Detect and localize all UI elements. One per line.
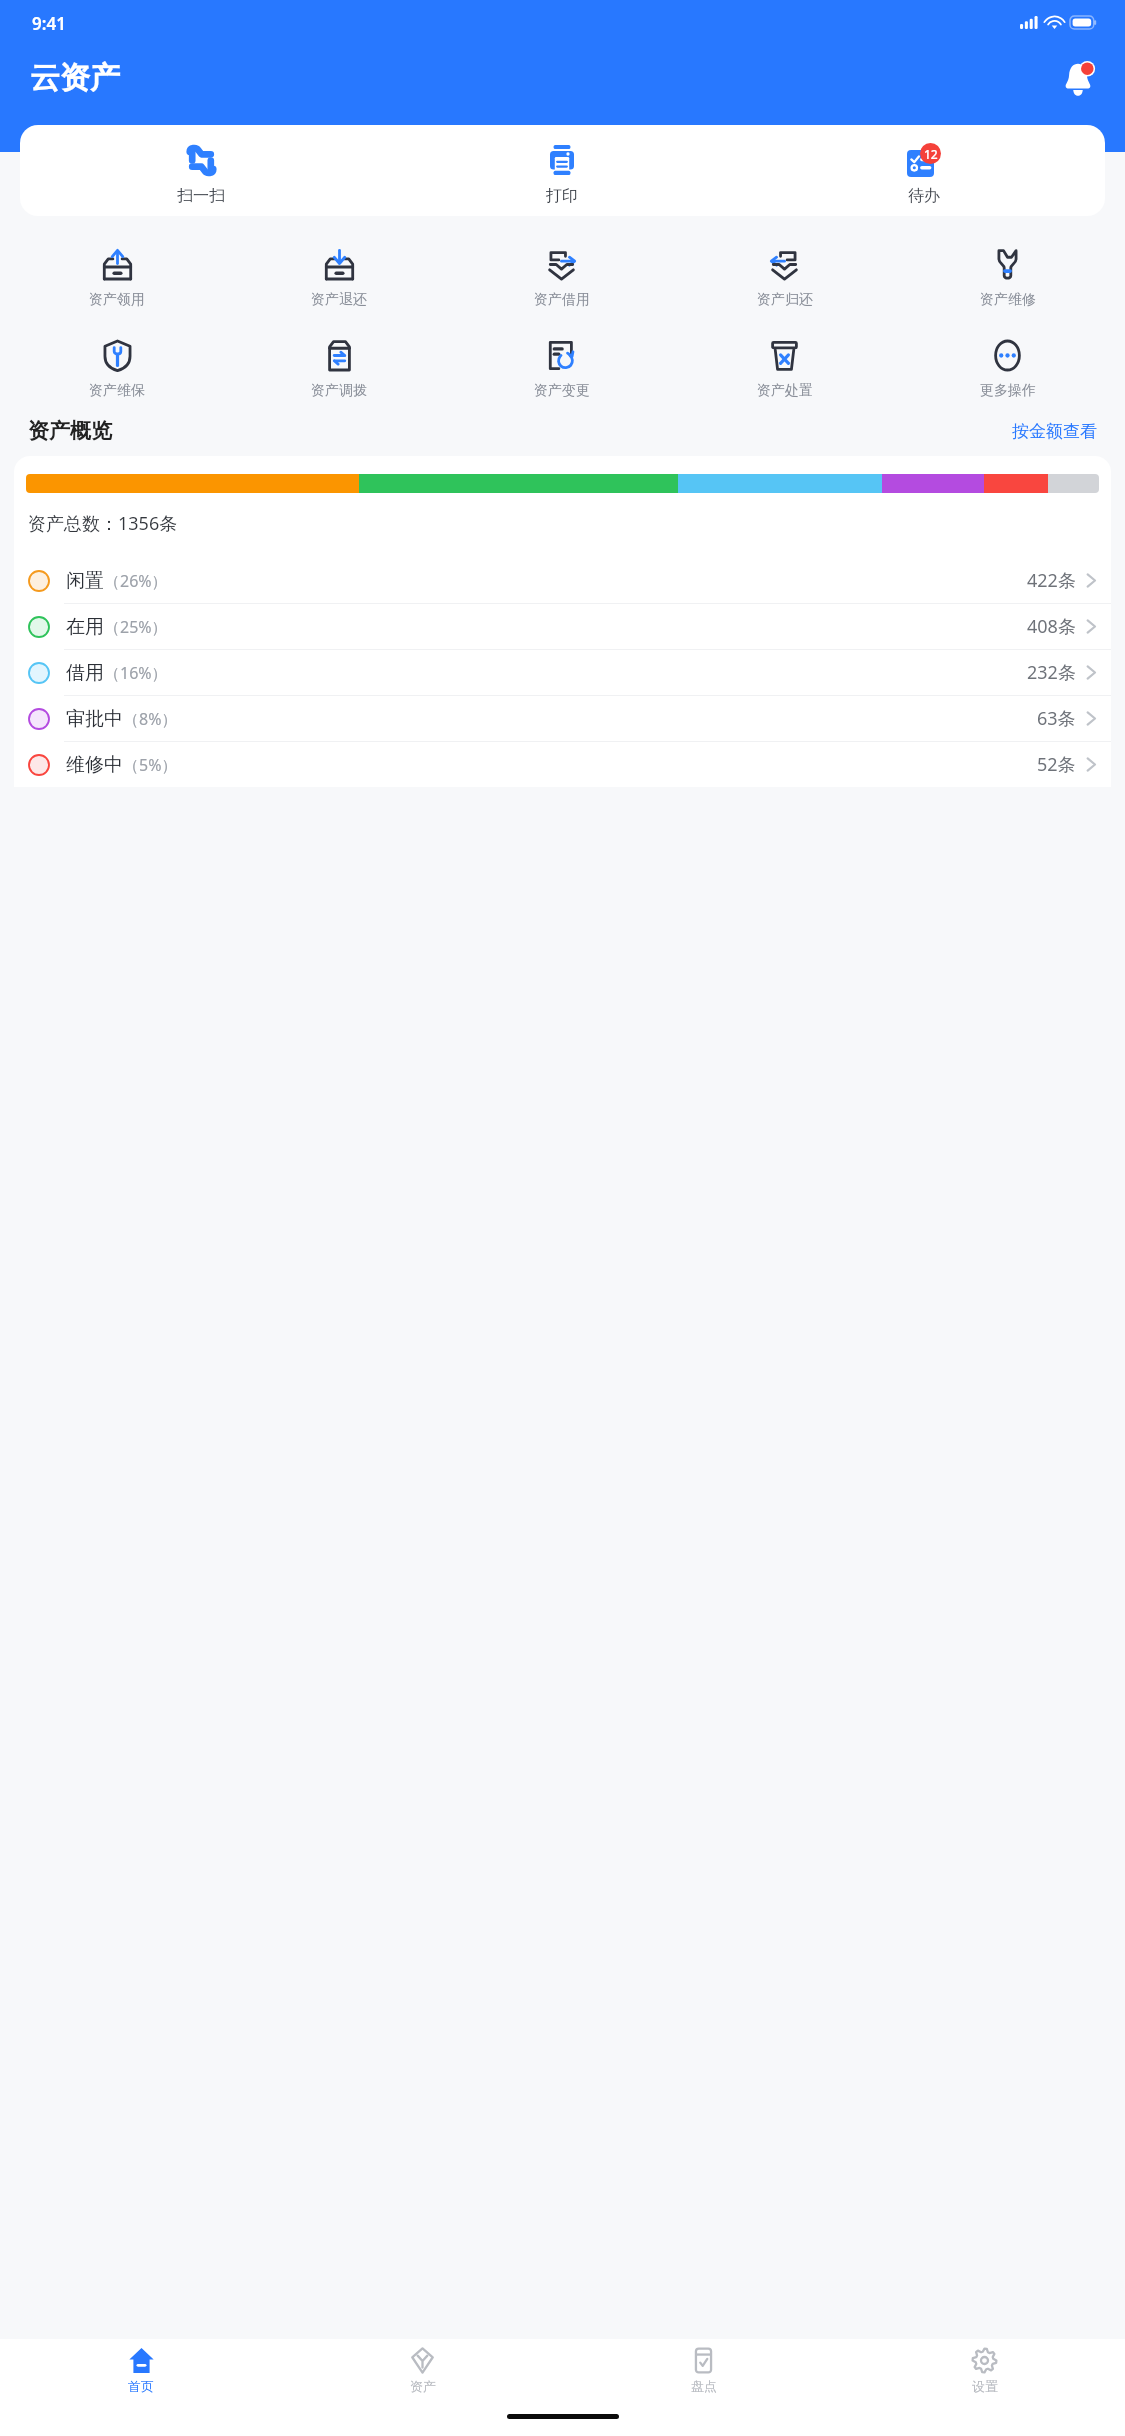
staticText: 9:41 — [32, 12, 66, 35]
staticText: 按金额查看 — [1012, 421, 1097, 442]
button[interactable]: 按金额查看 — [1012, 421, 1097, 442]
staticText: 打印 — [546, 186, 578, 206]
staticText: 63条 — [1037, 706, 1076, 731]
staticText: 闲置 — [66, 569, 104, 593]
button[interactable]: 闲置 — [14, 558, 1111, 603]
button[interactable]: 扫一扫 — [20, 135, 381, 206]
staticText: 首页 — [128, 2378, 154, 2394]
button[interactable]: 首页 — [0, 2347, 282, 2394]
button[interactable]: 资产借用 — [450, 244, 673, 313]
staticText: 资产 — [410, 2378, 436, 2394]
button[interactable]: 资产调拨 — [228, 335, 450, 404]
staticText: 资产总数：1356条 — [28, 511, 178, 536]
staticText: 资产退还 — [311, 291, 367, 309]
staticText: 资产借用 — [534, 291, 590, 309]
staticText: 盘点 — [691, 2378, 717, 2394]
staticText: （25%） — [104, 616, 168, 638]
staticText: 408条 — [1027, 614, 1076, 639]
button[interactable]: 借用 — [14, 650, 1111, 695]
staticText: 232条 — [1027, 660, 1076, 685]
button[interactable]: 资产归还 — [673, 244, 896, 313]
staticText: 扫一扫 — [177, 186, 225, 206]
button[interactable]: 资产维修 — [896, 244, 1119, 313]
staticText: 审批中 — [66, 707, 123, 731]
staticText: 更多操作 — [980, 382, 1036, 400]
staticText: （26%） — [104, 570, 168, 592]
staticText: 资产概览 — [28, 418, 112, 444]
staticText: 借用 — [66, 661, 104, 685]
button[interactable]: Notifications — [1055, 55, 1101, 101]
staticText: 12 — [924, 146, 938, 162]
staticText: 维修中 — [66, 753, 123, 777]
staticText: 资产维保 — [89, 382, 145, 400]
button[interactable]: 打印 — [381, 135, 743, 206]
button[interactable]: 资产领用 — [6, 244, 228, 313]
staticText: 422条 — [1027, 568, 1076, 593]
button[interactable]: 资产变更 — [450, 335, 673, 404]
button[interactable]: 维修中 — [14, 742, 1111, 787]
staticText: （5%） — [123, 754, 178, 776]
staticText: 52条 — [1037, 752, 1076, 777]
staticText: 资产调拨 — [311, 382, 367, 400]
button[interactable]: 资产处置 — [673, 335, 896, 404]
staticText: 资产归还 — [757, 291, 813, 309]
staticText: 资产维修 — [980, 291, 1036, 309]
staticText: 资产领用 — [89, 291, 145, 309]
staticText: （8%） — [123, 708, 178, 730]
button[interactable]: 设置 — [844, 2347, 1125, 2394]
button[interactable]: 更多操作 — [896, 335, 1119, 404]
staticText: 待办 — [908, 186, 940, 206]
button[interactable]: 资产维保 — [6, 335, 228, 404]
button[interactable]: 12 — [743, 135, 1105, 206]
staticText: 资产处置 — [757, 382, 813, 400]
staticText: 在用 — [66, 615, 104, 639]
staticText: （16%） — [104, 662, 168, 684]
staticText: 资产变更 — [534, 382, 590, 400]
button[interactable]: 在用 — [14, 604, 1111, 649]
button[interactable]: 盘点 — [563, 2347, 844, 2394]
staticText: 云资产 — [30, 59, 120, 97]
staticText: 设置 — [972, 2378, 998, 2394]
button[interactable]: 审批中 — [14, 696, 1111, 741]
button[interactable]: 资产退还 — [228, 244, 450, 313]
button[interactable]: 资产 — [282, 2347, 563, 2394]
